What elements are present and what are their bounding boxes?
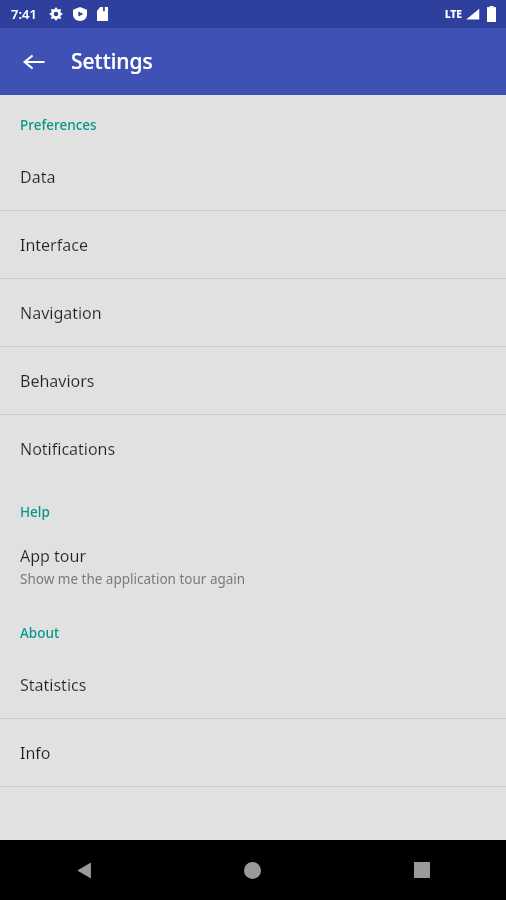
- button[interactable]: Navigation: [0, 279, 506, 346]
- staticText: Preferences: [20, 116, 97, 134]
- staticText: Data: [20, 166, 56, 188]
- staticText: Show me the application tour again: [20, 570, 246, 588]
- button[interactable]: Info: [0, 719, 506, 786]
- staticText: Navigation: [20, 302, 102, 324]
- button[interactable]: Home: [168, 840, 337, 900]
- button[interactable]: Navigate up: [11, 39, 57, 85]
- staticText: Interface: [20, 234, 88, 256]
- staticText: About: [20, 624, 60, 642]
- button[interactable]: Recent apps: [337, 840, 506, 900]
- staticText: 7:41: [11, 5, 37, 23]
- staticText: Statistics: [20, 674, 87, 696]
- staticText: App tour: [20, 545, 87, 567]
- staticText: LTE: [445, 7, 462, 21]
- staticText: Notifications: [20, 438, 116, 460]
- button[interactable]: Interface: [0, 211, 506, 278]
- button[interactable]: Back: [0, 840, 168, 900]
- button[interactable]: Data: [0, 143, 506, 210]
- button[interactable]: Notifications: [0, 415, 506, 482]
- staticText: Behaviors: [20, 370, 95, 392]
- button[interactable]: Statistics: [0, 651, 506, 718]
- staticText: Settings: [71, 47, 153, 76]
- staticText: Help: [20, 503, 50, 521]
- button[interactable]: App tour: [0, 530, 506, 603]
- staticText: Info: [20, 742, 51, 764]
- button[interactable]: Behaviors: [0, 347, 506, 414]
